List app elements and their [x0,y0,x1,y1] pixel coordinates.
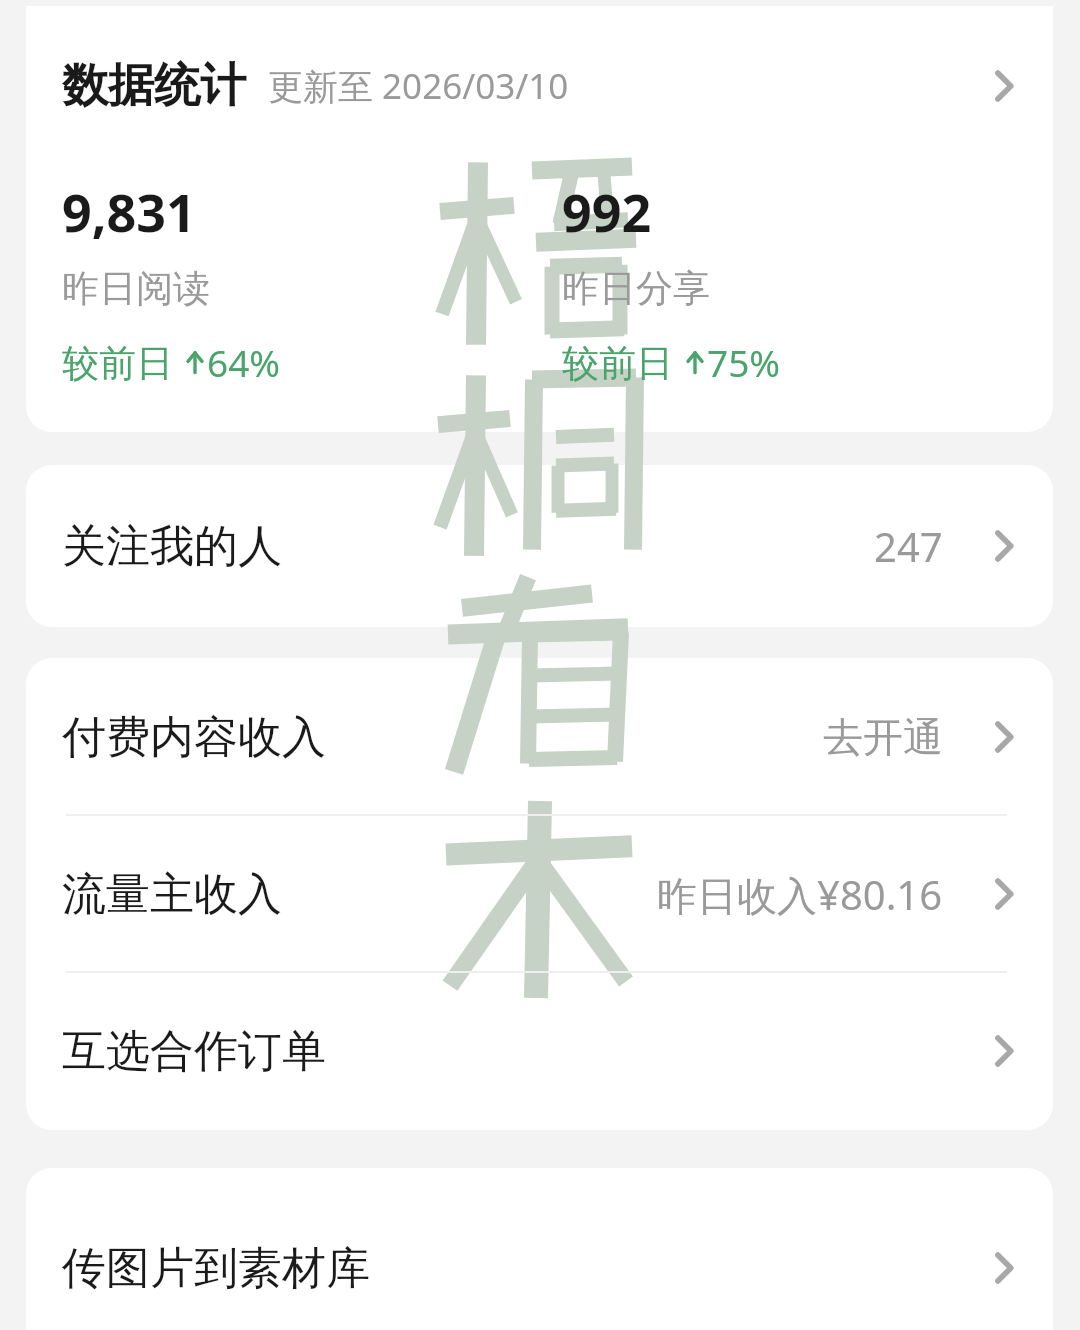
staticText: 247 [874,519,943,573]
button[interactable]: 关注我的人 [26,465,1053,627]
staticText: 更新至 2026/03/10 [268,62,569,110]
staticText: 较前日 [62,336,183,387]
staticText: 昨日阅读 [62,265,210,312]
staticText: 传图片到素材库 [62,1241,370,1296]
other: 查看数据统计 [977,58,1033,114]
staticText: 较前日 [562,336,683,387]
staticText: 75% [707,337,781,387]
staticText: 昨日分享 [562,265,710,312]
staticText: 992 [562,176,652,247]
button[interactable]: 传图片到素材库 [26,1168,1053,1330]
button[interactable]: 流量主收入 [26,815,1053,972]
staticText: 昨日收入¥80.16 [657,867,943,922]
staticText: 流量主收入 [62,867,282,922]
staticText: 64% [207,337,281,387]
button[interactable]: 数据统计 [26,6,1053,166]
button[interactable]: 9,831 [62,170,482,387]
staticText: 关注我的人 [62,519,282,574]
staticText: 互选合作订单 [62,1024,326,1079]
button[interactable]: 992 [562,170,982,387]
staticText: 去开通 [823,712,943,762]
button[interactable]: 付费内容收入 [26,658,1053,815]
staticText: 9,831 [62,176,196,247]
staticText: 付费内容收入 [62,710,326,765]
staticText: 数据统计 [62,57,246,115]
button[interactable]: 互选合作订单 [26,972,1053,1130]
